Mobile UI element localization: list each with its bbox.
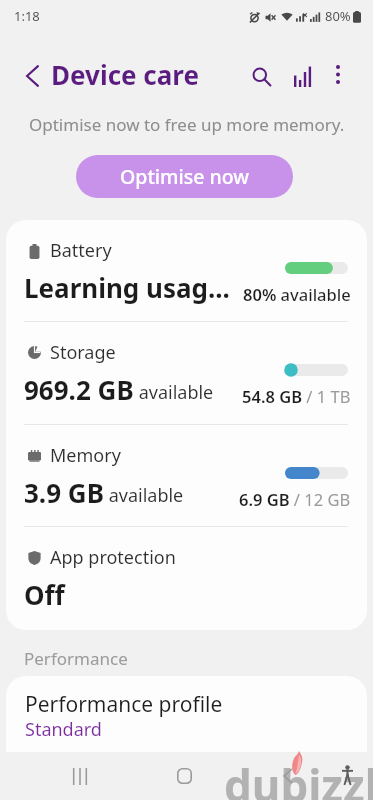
button[interactable]: Recent apps: [56, 752, 104, 800]
staticText: Battery: [50, 238, 112, 263]
staticText: 54.8 GB / 1 TB: [242, 385, 351, 407]
staticText: Device care: [51, 57, 199, 92]
staticText: Off: [24, 577, 65, 612]
button[interactable]: Search: [239, 54, 283, 98]
staticText: Learning usag...: [24, 270, 230, 305]
staticText: 80% available: [243, 283, 351, 305]
button[interactable]: Home: [160, 752, 208, 800]
button[interactable]: Memory: [6, 425, 367, 527]
button[interactable]: App protection: [6, 527, 367, 627]
staticText: Performance profile: [25, 690, 223, 719]
staticText: 80%: [325, 7, 351, 25]
staticText: 6.9 GB / 12 GB: [239, 488, 351, 510]
staticText: available: [104, 483, 184, 508]
staticText: dubizzle: [224, 755, 373, 800]
button[interactable]: More options: [316, 52, 360, 96]
staticText: Memory: [50, 443, 121, 468]
staticText: App protection: [50, 545, 176, 570]
staticText: 3.9 GB: [24, 475, 104, 510]
staticText: Optimise now: [120, 163, 250, 190]
button[interactable]: Navigate up: [10, 54, 54, 98]
button[interactable]: Optimise now: [76, 155, 293, 198]
button[interactable]: Back: [264, 752, 312, 800]
staticText: Storage: [50, 340, 116, 365]
staticText: 969.2 GB: [24, 372, 134, 407]
button[interactable]: Performance profile: [6, 676, 367, 800]
button[interactable]: Storage: [6, 322, 367, 425]
button[interactable]: Usage statistics: [281, 54, 325, 98]
button[interactable]: Battery: [6, 220, 367, 322]
staticText: Performance: [24, 647, 128, 670]
staticText: Optimise now to free up more memory.: [29, 113, 345, 135]
staticText: 1:18: [14, 7, 40, 25]
staticText: available: [134, 380, 214, 405]
staticText: Standard: [25, 717, 102, 742]
